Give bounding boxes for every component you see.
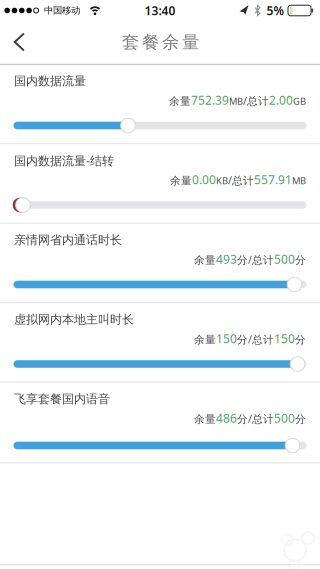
- staticText: 486: [216, 410, 237, 426]
- staticText: 总计: [232, 174, 254, 187]
- staticText: KB: [216, 174, 228, 187]
- staticText: 2.00: [269, 92, 293, 108]
- staticText: 150: [274, 330, 295, 346]
- staticText: 余量: [194, 254, 216, 267]
- staticText: 余量: [194, 413, 216, 426]
- staticText: 500: [274, 410, 295, 426]
- staticText: 分: [237, 333, 248, 346]
- staticText: 分: [295, 413, 306, 426]
- staticText: /: [228, 173, 232, 187]
- staticText: 中国移动: [44, 5, 80, 16]
- staticText: 总计: [252, 413, 274, 426]
- staticText: 余量: [170, 174, 192, 187]
- staticText: 5%: [266, 2, 284, 18]
- staticText: /: [248, 252, 252, 267]
- staticText: /: [243, 93, 247, 108]
- staticText: 国内数据流量: [14, 74, 86, 88]
- staticText: GB: [293, 95, 306, 107]
- staticText: 分: [295, 254, 306, 267]
- staticText: 余量: [194, 333, 216, 346]
- staticText: 总计: [252, 254, 274, 267]
- staticText: 分: [237, 254, 248, 267]
- staticText: 飞享套餐国内语音: [14, 392, 110, 406]
- staticText: 分: [295, 333, 306, 346]
- staticText: 国内数据流量-结转: [14, 152, 114, 168]
- staticText: 亲情网省内通话时长: [14, 233, 122, 247]
- staticText: 虚拟网内本地主叫时长: [14, 312, 134, 327]
- staticText: MB: [229, 95, 243, 107]
- staticText: MB: [292, 174, 306, 187]
- staticText: 500: [274, 251, 295, 267]
- staticText: 493: [216, 251, 237, 267]
- staticText: 0.00: [192, 171, 216, 187]
- staticText: 总计: [247, 95, 269, 108]
- staticText: 752.39: [191, 92, 229, 108]
- staticText: /: [248, 332, 252, 346]
- staticText: 13:40: [144, 2, 175, 18]
- staticText: /: [248, 411, 252, 426]
- staticText: 557.91: [254, 171, 292, 187]
- staticText: 套餐余量: [122, 32, 199, 53]
- staticText: 分: [237, 413, 248, 426]
- staticText: 余量: [169, 95, 191, 108]
- button[interactable]: Back: [5, 26, 33, 57]
- staticText: 150: [216, 330, 237, 346]
- staticText: 总计: [252, 333, 274, 346]
